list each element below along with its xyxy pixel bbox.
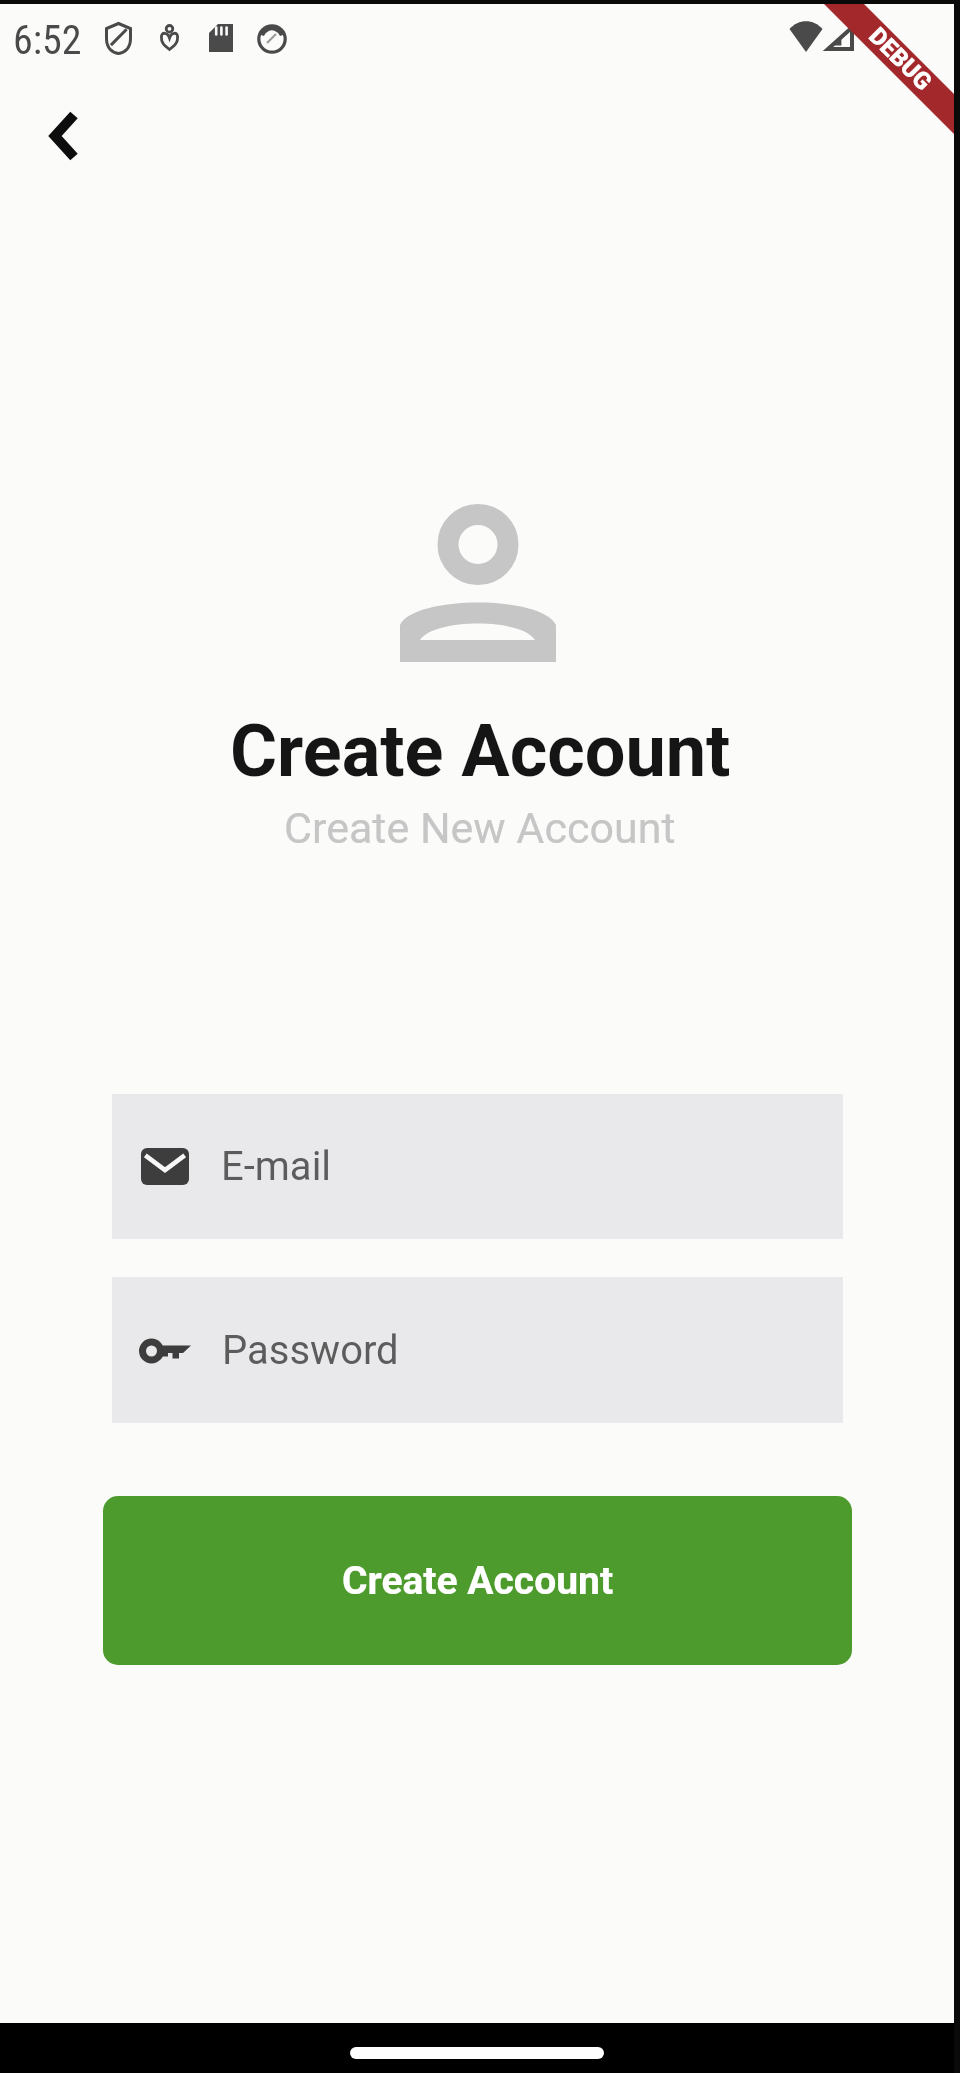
staticText: E-mail [221,1143,332,1190]
staticText: Create Account [342,1558,614,1604]
staticText: DEBUG [863,22,938,96]
staticText: 6:52 [13,17,82,64]
staticText: Create New Account [284,803,676,853]
button[interactable]: Create Account [103,1496,852,1665]
staticText: Create Account [230,709,731,793]
staticText: Password [222,1327,399,1374]
button[interactable]: Password [112,1277,843,1423]
button[interactable]: E-mail [112,1094,843,1239]
button[interactable]: Back [17,90,108,181]
